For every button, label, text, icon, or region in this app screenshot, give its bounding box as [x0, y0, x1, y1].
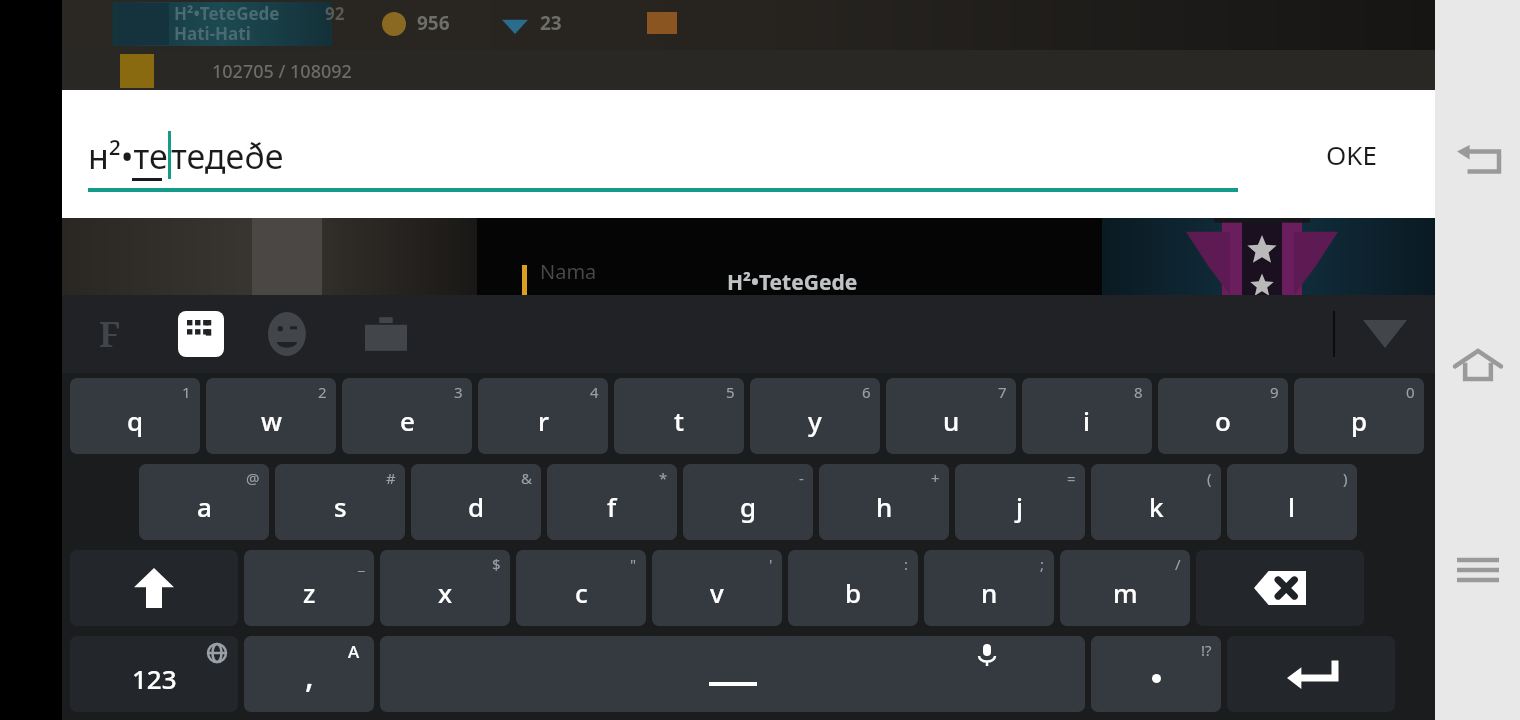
staticText: # [386, 468, 396, 488]
button[interactable]: Keyboard [178, 311, 224, 357]
button[interactable]: 1 [70, 378, 200, 454]
staticText: l [1288, 489, 1296, 524]
staticText: Hati-Hati [174, 22, 251, 45]
staticText: k [1149, 489, 1164, 524]
staticText: : [904, 554, 909, 574]
staticText: $ [492, 554, 501, 574]
staticText: , [305, 654, 314, 698]
staticText: 956 [417, 10, 450, 36]
button[interactable]: , [244, 636, 374, 712]
staticText: 2 [318, 382, 327, 402]
button[interactable]: _ [244, 550, 374, 626]
staticText: 123 [132, 661, 177, 696]
staticText: z [303, 575, 316, 610]
staticText: 8 [1134, 382, 1143, 402]
staticText: - [799, 468, 804, 488]
staticText: !? [1201, 640, 1212, 660]
button[interactable]: 7 [886, 378, 1016, 454]
button[interactable]: 123 [70, 636, 238, 712]
staticText: n [981, 575, 998, 610]
staticText: x [438, 575, 453, 610]
staticText: v [710, 575, 724, 610]
staticText: ) [1343, 468, 1348, 488]
button[interactable]: # [275, 464, 405, 540]
staticText: p [1351, 403, 1368, 438]
staticText: ; [1040, 554, 1045, 574]
button[interactable]: Recent apps [1435, 530, 1520, 610]
staticText: * [659, 468, 668, 488]
staticText: f [607, 489, 617, 524]
button[interactable]: $ [380, 550, 510, 626]
staticText: @ [246, 468, 260, 488]
staticText: j [1016, 489, 1024, 524]
staticText: a [197, 489, 212, 524]
staticText: F [99, 311, 121, 357]
button[interactable]: & [411, 464, 541, 540]
button[interactable]: ) [1227, 464, 1357, 540]
button[interactable]: 8 [1022, 378, 1152, 454]
staticText: H²•TeteGede [174, 2, 280, 25]
staticText: 7 [998, 382, 1007, 402]
button[interactable]: * [547, 464, 677, 540]
staticText: ( [1207, 468, 1212, 488]
staticText: 5 [726, 382, 735, 402]
button[interactable]: Backspace [1196, 550, 1364, 626]
staticText: d [468, 489, 485, 524]
staticText: t [674, 403, 684, 438]
button[interactable]: " [516, 550, 646, 626]
button[interactable]: 3 [342, 378, 472, 454]
staticText: e [400, 403, 415, 438]
staticText: тедеðе [171, 133, 284, 179]
staticText: 0 [1406, 382, 1415, 402]
staticText: w [261, 403, 282, 438]
staticText: h [876, 489, 893, 524]
button[interactable]: 9 [1158, 378, 1288, 454]
staticText: н²•те [88, 133, 168, 179]
button[interactable]: @ [139, 464, 269, 540]
staticText: b [845, 575, 862, 610]
button[interactable]: Hide keyboard [1335, 295, 1435, 373]
button[interactable]: ; [924, 550, 1054, 626]
button[interactable]: ' [652, 550, 782, 626]
button[interactable]: 4 [478, 378, 608, 454]
staticText: m [1113, 575, 1138, 610]
staticText: g [740, 489, 757, 524]
staticText: " [630, 554, 637, 574]
staticText: o [1215, 403, 1231, 438]
staticText: H²•TeteGede [727, 268, 858, 297]
staticText: y [808, 403, 822, 438]
button[interactable]: Home [1435, 325, 1520, 405]
button[interactable]: !? [1091, 636, 1221, 712]
staticText: q [127, 403, 144, 438]
button[interactable]: Shift [70, 550, 238, 626]
staticText: 4 [590, 382, 599, 402]
button[interactable]: ( [1091, 464, 1221, 540]
button[interactable]: 6 [750, 378, 880, 454]
button[interactable]: / [1060, 550, 1190, 626]
button[interactable]: - [683, 464, 813, 540]
button[interactable]: Keyboard settings [82, 306, 138, 362]
button[interactable]: 5 [614, 378, 744, 454]
button[interactable]: Back [1435, 120, 1520, 200]
staticText: c [575, 575, 588, 610]
staticText: u [943, 403, 960, 438]
button[interactable]: + [819, 464, 949, 540]
button[interactable]: Clipboard [360, 308, 412, 360]
button[interactable]: OKE [1310, 127, 1393, 182]
button[interactable]: : [788, 550, 918, 626]
staticText: & [521, 468, 532, 488]
staticText: OKE [1326, 137, 1377, 172]
staticText: 23 [540, 10, 562, 36]
button[interactable]: Emoji [264, 308, 316, 360]
staticText: 92 [325, 2, 345, 25]
button[interactable]: 2 [206, 378, 336, 454]
staticText: 102705 / 108092 [212, 59, 352, 84]
staticText: 9 [1270, 382, 1279, 402]
button[interactable]: = [955, 464, 1085, 540]
button[interactable]: 0 [1294, 378, 1424, 454]
button[interactable]: н²•те [88, 118, 1238, 192]
staticText: Nama [540, 258, 597, 285]
button[interactable]: Enter [1227, 636, 1395, 712]
button[interactable]: Space [380, 636, 1085, 712]
staticText: _ [358, 554, 365, 574]
